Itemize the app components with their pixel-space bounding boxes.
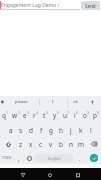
staticText: r (33, 111, 36, 120)
button[interactable]: t (41, 108, 51, 123)
staticText: 0 (97, 110, 100, 115)
button[interactable]: g (46, 123, 56, 137)
staticText: 3 (27, 110, 30, 115)
staticText: y (53, 111, 57, 120)
button[interactable]: Voice input (84, 96, 101, 108)
button[interactable]: Recents (67, 168, 88, 180)
staticText: p (93, 111, 97, 120)
button[interactable]: uh (67, 96, 84, 108)
staticText: 5 (46, 110, 49, 115)
button[interactable]: , (13, 151, 24, 165)
button[interactable]: o (81, 108, 91, 123)
button[interactable]: Send (81, 1, 100, 10)
button[interactable]: b (56, 137, 66, 151)
staticText: a (9, 126, 13, 135)
staticText: uh (73, 99, 79, 105)
button[interactable]: n (66, 137, 76, 151)
staticText: q (2, 111, 6, 120)
button[interactable]: a (6, 123, 16, 137)
staticText: k (79, 126, 83, 135)
button[interactable]: k (76, 123, 86, 137)
staticText: 8 (76, 110, 79, 115)
button[interactable]: . (73, 151, 86, 165)
staticText: e (23, 111, 27, 120)
staticText: u (63, 111, 67, 120)
staticText: b (59, 140, 63, 149)
button[interactable]: Shift (0, 137, 16, 151)
button[interactable]: Emoji (24, 151, 35, 165)
staticText: ?123 (2, 155, 12, 161)
button[interactable]: I (39, 96, 67, 108)
button[interactable]: Google (0, 96, 10, 108)
button[interactable]: q (0, 108, 11, 123)
button[interactable]: j (66, 123, 76, 137)
button[interactable]: e (21, 108, 31, 123)
button[interactable]: Home (39, 168, 61, 180)
button[interactable]: please (10, 96, 33, 108)
button[interactable]: w (11, 108, 21, 123)
staticText: w (12, 111, 18, 120)
button[interactable]: Backspace (86, 137, 101, 151)
staticText: 6 (57, 110, 60, 115)
staticText: 9 (87, 110, 90, 115)
staticText: 4 (36, 110, 39, 115)
button[interactable]: d (26, 123, 36, 137)
staticText: 2 (18, 110, 21, 115)
button[interactable]: z (16, 137, 26, 151)
staticText: . (79, 154, 81, 163)
button[interactable]: p (91, 108, 101, 123)
staticText: v (49, 140, 53, 149)
staticText: l (90, 126, 92, 135)
staticText: g (49, 126, 53, 135)
staticText: z (19, 140, 23, 149)
staticText: Send (85, 3, 96, 9)
staticText: x (29, 140, 33, 149)
staticText: d (29, 126, 33, 135)
staticText: j (70, 126, 72, 135)
button[interactable]: ?123 (0, 151, 13, 165)
staticText: c (39, 140, 43, 149)
staticText: 7 (67, 110, 70, 115)
button[interactable]: h (56, 123, 66, 137)
button[interactable]: s (16, 123, 26, 137)
button[interactable]: Back (12, 168, 33, 180)
staticText: h (59, 126, 63, 135)
staticText: please (15, 99, 28, 105)
button[interactable]: c (36, 137, 46, 151)
button[interactable]: u (61, 108, 71, 123)
button[interactable]: x (26, 137, 36, 151)
staticText: s (19, 126, 23, 135)
button[interactable]: v (46, 137, 56, 151)
staticText: I (52, 99, 54, 105)
staticText: f (40, 126, 43, 135)
button[interactable]: y (51, 108, 61, 123)
staticText: , (18, 154, 20, 163)
staticText: m (78, 140, 84, 149)
staticText: o (83, 111, 87, 120)
button[interactable]: m (76, 137, 86, 151)
staticText: 1 (6, 110, 9, 115)
button[interactable]: English (35, 154, 73, 162)
button[interactable]: i (71, 108, 81, 123)
button[interactable]: r (31, 108, 41, 123)
staticText: n (69, 140, 73, 149)
button[interactable]: f (36, 123, 46, 137)
staticText: English (48, 156, 61, 161)
button[interactable]: Enter (86, 151, 101, 165)
staticText: t (43, 111, 46, 120)
button[interactable]: l (86, 123, 96, 137)
staticText: Engagement Lag Demo i (1, 2, 59, 9)
staticText: i (74, 111, 76, 120)
